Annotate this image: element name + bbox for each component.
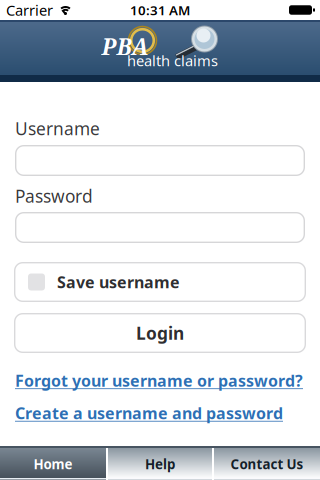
staticText: health claims: [127, 51, 218, 70]
staticText: Username: [15, 117, 100, 140]
staticText: Save username: [57, 271, 180, 293]
staticText: Forgot your username or password?: [15, 370, 303, 391]
button[interactable]: Help: [108, 448, 212, 480]
button[interactable]: Save username: [14, 262, 306, 302]
staticText: Create a username and password: [15, 402, 283, 424]
button[interactable]: Home: [0, 448, 106, 480]
staticText: Password: [15, 184, 93, 207]
staticText: Help: [145, 455, 175, 473]
button[interactable]: Forgot your username or password?: [0, 370, 320, 391]
staticText: Contact Us: [230, 455, 303, 473]
button[interactable]: Password: [15, 212, 305, 243]
staticText: Home: [33, 455, 72, 473]
button[interactable]: Username: [15, 145, 305, 176]
button[interactable]: Create a username and password: [0, 402, 320, 424]
staticText: PBA: [101, 31, 148, 62]
staticText: Login: [136, 321, 184, 344]
button[interactable]: Login: [14, 313, 306, 353]
staticText: Carrier: [6, 0, 53, 20]
button[interactable]: Contact Us: [214, 448, 320, 480]
staticText: 10:31 AM: [130, 1, 190, 19]
